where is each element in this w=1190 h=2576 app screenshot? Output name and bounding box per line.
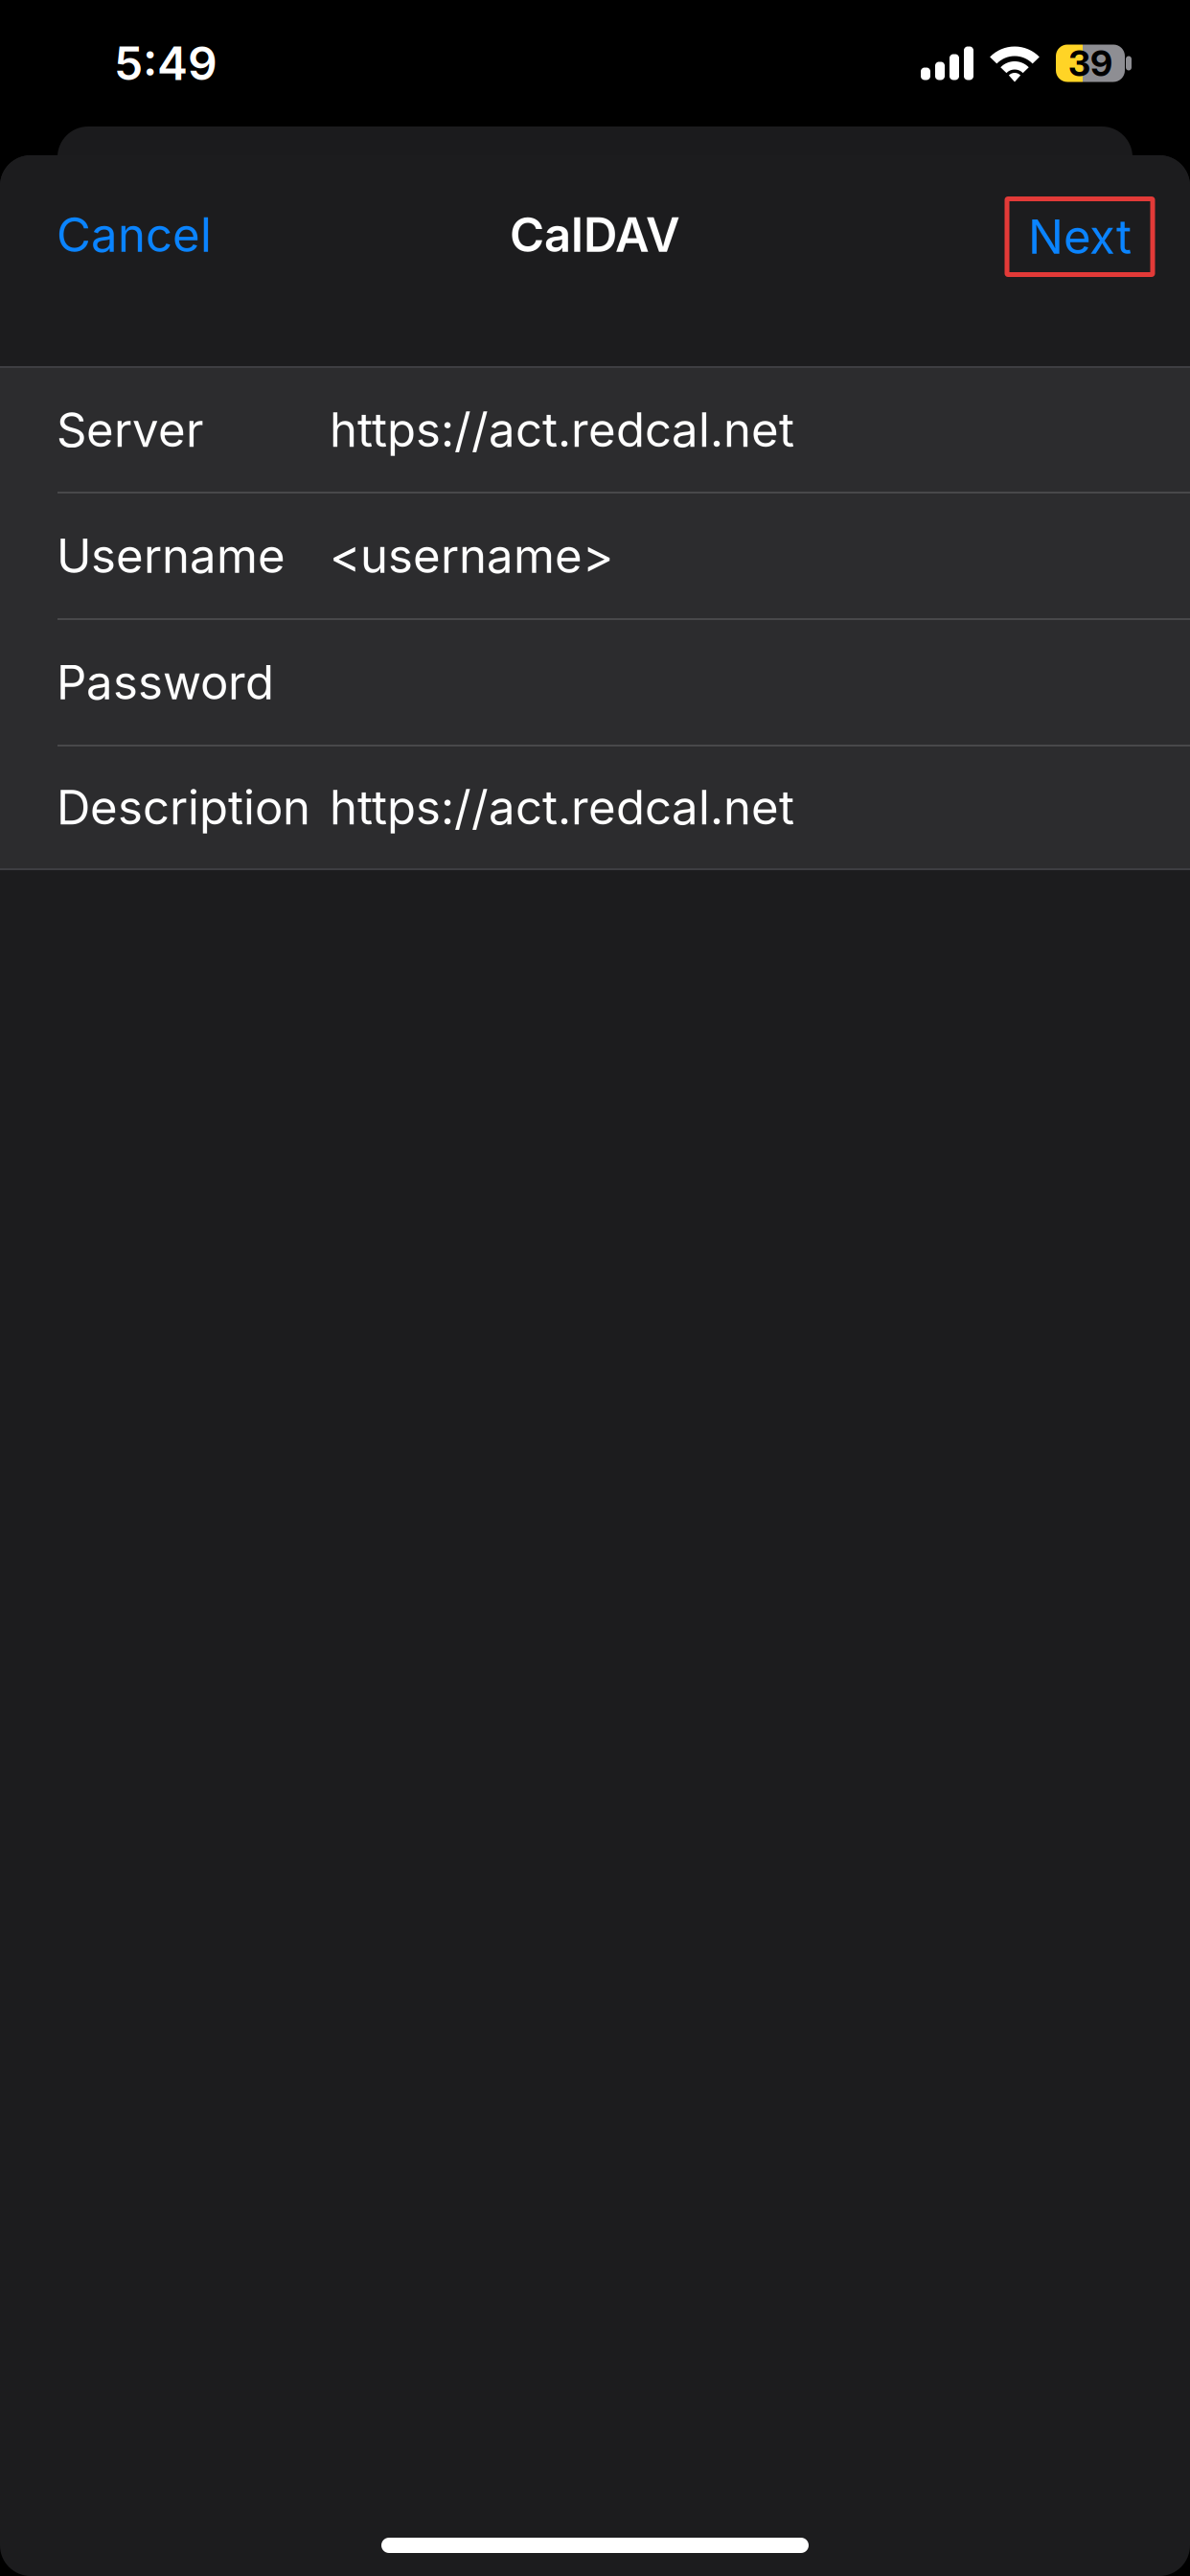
button[interactable]: Next — [1007, 195, 1153, 275]
staticText: Cancel — [57, 206, 212, 263]
button[interactable]: Password — [0, 620, 1190, 745]
staticText: 39 — [1068, 42, 1112, 85]
staticText: Next — [1028, 208, 1132, 265]
button[interactable]: Username — [0, 494, 1190, 618]
staticText: Server — [57, 401, 203, 458]
staticText: https://act.redcal.net — [330, 779, 794, 836]
staticText: 5:49 — [114, 35, 217, 91]
staticText: Username — [57, 527, 286, 584]
staticText: Description — [57, 779, 310, 836]
button[interactable]: Server — [0, 368, 1190, 492]
button[interactable]: Cancel — [0, 182, 250, 287]
staticText: CalDAV — [510, 206, 680, 263]
staticText: Password — [57, 654, 274, 711]
button[interactable]: Description — [0, 747, 1190, 868]
staticText: https://act.redcal.net — [330, 401, 794, 458]
staticText: <username> — [330, 527, 613, 584]
